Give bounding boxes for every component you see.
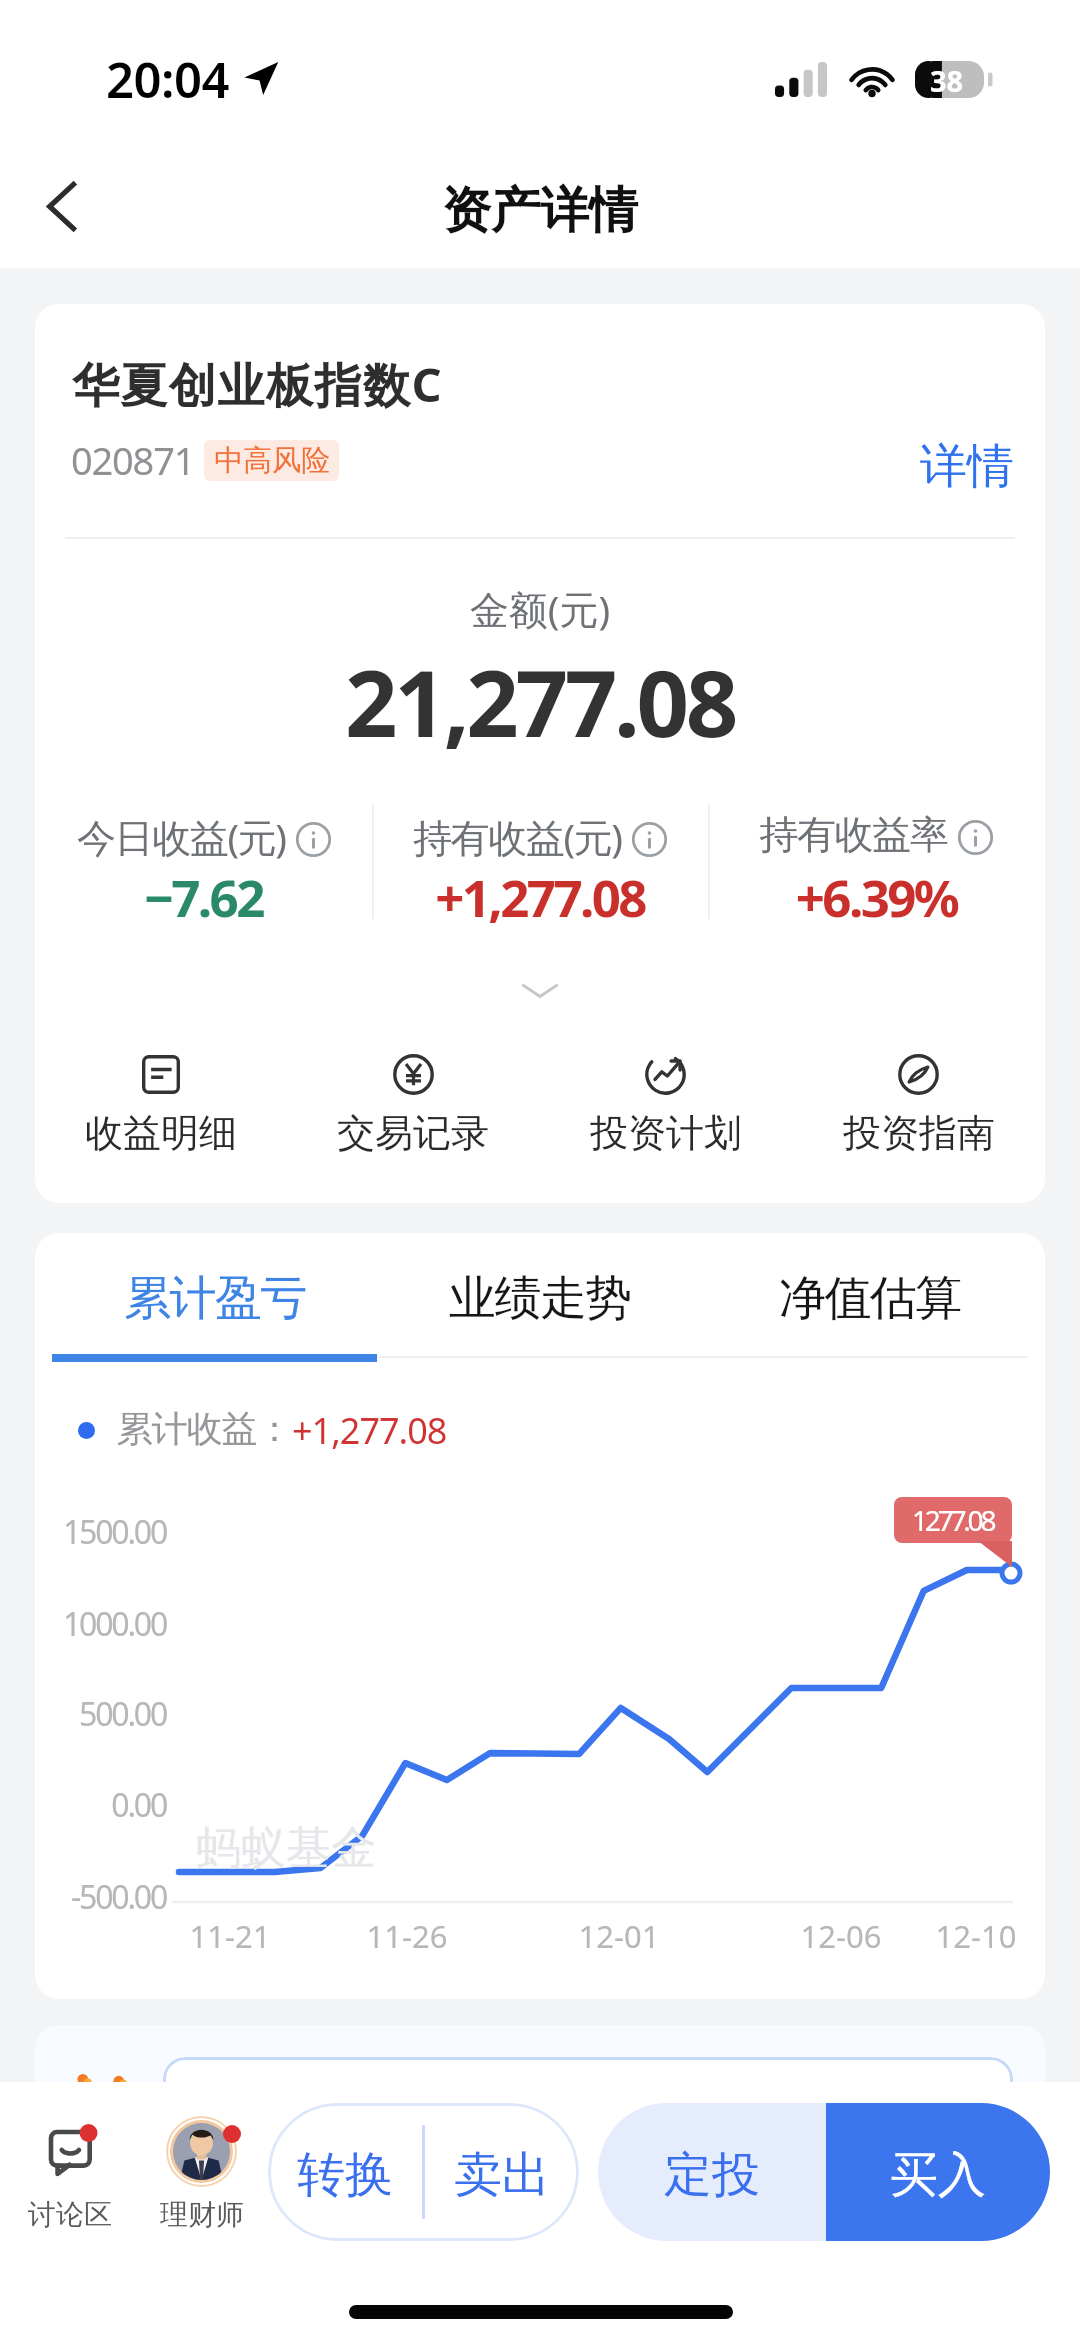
staticText: 21,277.08 — [35, 639, 1045, 764]
button[interactable]: 投资计划 — [539, 1052, 792, 1157]
staticText: 1277.08 — [912, 1501, 994, 1539]
button[interactable]: 净值估算 — [705, 1233, 1035, 1353]
button[interactable]: 讨论区 — [14, 2116, 126, 2246]
button[interactable]: 投资指南 — [792, 1052, 1045, 1157]
staticText: 11-26 — [317, 1915, 497, 1957]
staticText: 1500.00 — [35, 1510, 166, 1554]
staticText: 定投 — [664, 2145, 760, 2205]
staticText: 转换 — [297, 2145, 393, 2205]
staticText: 收益明细 — [85, 1109, 237, 1157]
button[interactable]: 收益明细 — [35, 1052, 287, 1157]
staticText: 资产详情 — [442, 180, 638, 242]
button[interactable]: 转换 — [268, 2103, 422, 2241]
staticText: 12-06 — [751, 1915, 931, 1957]
button[interactable]: 定投 — [598, 2103, 826, 2241]
staticText: 金额(元) — [35, 582, 1045, 635]
staticText: +6.39% — [708, 862, 1045, 931]
staticText: 12-01 — [529, 1915, 709, 1957]
button[interactable]: 详情 — [892, 426, 1041, 506]
staticText: 净值估算 — [779, 1269, 961, 1328]
staticText: 今日收益(元) — [77, 810, 286, 863]
staticText: 持有收益(元) — [413, 810, 622, 863]
staticText: 业绩走势 — [449, 1269, 631, 1328]
staticText: 华夏创业板指数C — [72, 352, 444, 416]
staticText: 交易记录 — [337, 1109, 489, 1157]
staticText: 蚂蚁基金 — [196, 1820, 376, 1877]
staticText: -500.00 — [35, 1875, 166, 1919]
staticText: 投资指南 — [843, 1109, 995, 1157]
button[interactable]: 理财师 — [146, 2116, 258, 2246]
button[interactable]: 累计盈亏 — [50, 1233, 380, 1353]
staticText: 020871 — [71, 434, 195, 486]
staticText: 卖出 — [454, 2145, 550, 2205]
button[interactable]: Back — [7, 151, 117, 261]
staticText: 中高风险 — [214, 442, 330, 479]
button[interactable]: 卖出 — [425, 2103, 579, 2241]
staticText: 投资计划 — [590, 1109, 742, 1157]
staticText: 12-10 — [886, 1915, 1045, 1957]
button[interactable]: 买入 — [826, 2103, 1050, 2241]
staticText: −7.62 — [35, 862, 372, 931]
staticText: 讨论区 — [14, 2197, 126, 2232]
staticText: 20:04 — [106, 46, 230, 113]
staticText: +1,277.08 — [292, 1406, 447, 1455]
staticText: +1,277.08 — [372, 862, 708, 931]
staticText: 累计收益： — [117, 1406, 292, 1451]
staticText: 买入 — [890, 2145, 986, 2205]
staticText: 累计盈亏 — [124, 1269, 306, 1328]
button[interactable]: 业绩走势 — [375, 1233, 705, 1353]
staticText: 理财师 — [146, 2197, 258, 2232]
staticText: 1000.00 — [35, 1602, 166, 1646]
button[interactable]: 交易记录 — [287, 1052, 539, 1157]
staticText: 500.00 — [35, 1692, 166, 1736]
staticText: 详情 — [920, 437, 1014, 496]
staticText: 11-21 — [140, 1915, 320, 1957]
staticText: 38 — [930, 61, 964, 98]
staticText: 0.00 — [35, 1783, 166, 1827]
staticText: 持有收益率 — [760, 810, 948, 859]
